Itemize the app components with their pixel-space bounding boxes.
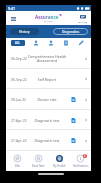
button[interactable]: Book Now <box>28 151 49 171</box>
staticText: 9:41 <box>8 6 15 11</box>
staticText: Assurance <box>35 14 59 20</box>
staticText: Notifications <box>73 164 89 168</box>
staticText: My Health <box>53 164 66 168</box>
button[interactable]: ALL <box>11 40 25 46</box>
button[interactable]: Report <box>62 39 70 47</box>
button[interactable]: Doctor <box>32 39 40 47</box>
button[interactable]: 27-Apr-22 <box>6 110 91 130</box>
button[interactable]: My Health <box>49 151 70 171</box>
staticText: My Card <box>78 20 88 23</box>
button[interactable]: My card <box>78 14 88 23</box>
staticText: 08-Jun-22 <box>11 97 27 102</box>
staticText: Bills <box>15 164 20 168</box>
staticText: ALL <box>15 41 21 45</box>
button[interactable]: History <box>10 28 39 35</box>
button[interactable]: Notes <box>77 39 85 47</box>
staticText: 2 <box>84 154 86 158</box>
staticText: Self Report <box>26 77 68 82</box>
button[interactable]: 2 <box>70 151 91 171</box>
staticText: Doctor visit <box>26 97 68 102</box>
staticText: Diagnostic test <box>26 118 68 123</box>
button[interactable]: 06-Sep-22 <box>6 48 91 69</box>
staticText: Diagnostic test <box>26 138 68 143</box>
staticText: 06-Sep-22 <box>11 56 27 61</box>
button[interactable]: 27-Apr-22 <box>6 130 91 151</box>
button[interactable]: Diagnostics <box>53 28 88 35</box>
button[interactable]: 08-Jun-22 <box>6 89 91 110</box>
staticText: Book Now <box>32 164 45 168</box>
staticText: History <box>19 30 30 34</box>
button[interactable]: Menu <box>10 15 17 22</box>
staticText: 27-Apr-22 <box>11 118 27 123</box>
staticText: Comprehensive Health Assessment <box>26 54 68 64</box>
staticText: by Aster <box>44 20 53 23</box>
staticText: 27-Apr-22 <box>11 138 27 143</box>
button[interactable]: Self <box>47 39 55 47</box>
staticText: Diagnostics <box>62 30 80 34</box>
staticText: 06-Sep-22 <box>11 77 27 82</box>
button[interactable]: Bills <box>6 151 28 171</box>
button[interactable]: 06-Sep-22 <box>6 69 91 89</box>
